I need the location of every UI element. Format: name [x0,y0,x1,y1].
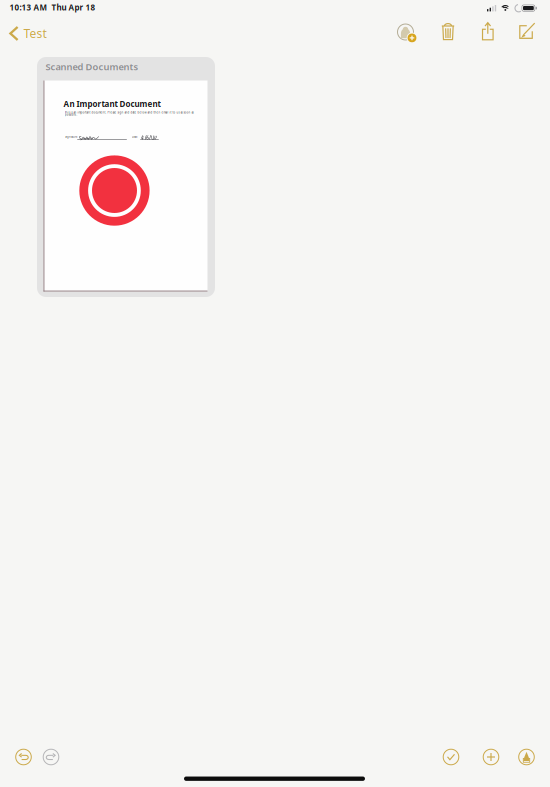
button[interactable]: Share [473,14,502,48]
staticText: Signature [65,135,78,138]
staticText: Scanned Documents [45,60,138,73]
button[interactable]: Done [436,742,466,772]
staticText: An Important Document [63,98,160,109]
staticText: Thu Apr 18 [51,2,95,13]
button[interactable]: Add [476,742,506,772]
staticText: possible. [64,113,77,116]
button[interactable]: Markup [511,742,541,772]
button[interactable]: Compose [512,15,543,46]
button[interactable]: Add People [388,14,423,49]
button[interactable]: Delete [434,15,462,48]
button[interactable]: Test [2,17,55,49]
staticText: This is an important document. Please si… [64,111,193,114]
staticText: Test [24,25,47,41]
button[interactable]: Redo [36,742,66,772]
button[interactable]: Undo [8,742,38,772]
staticText: 10:13 AM [10,2,48,13]
staticText: Date [132,135,138,138]
